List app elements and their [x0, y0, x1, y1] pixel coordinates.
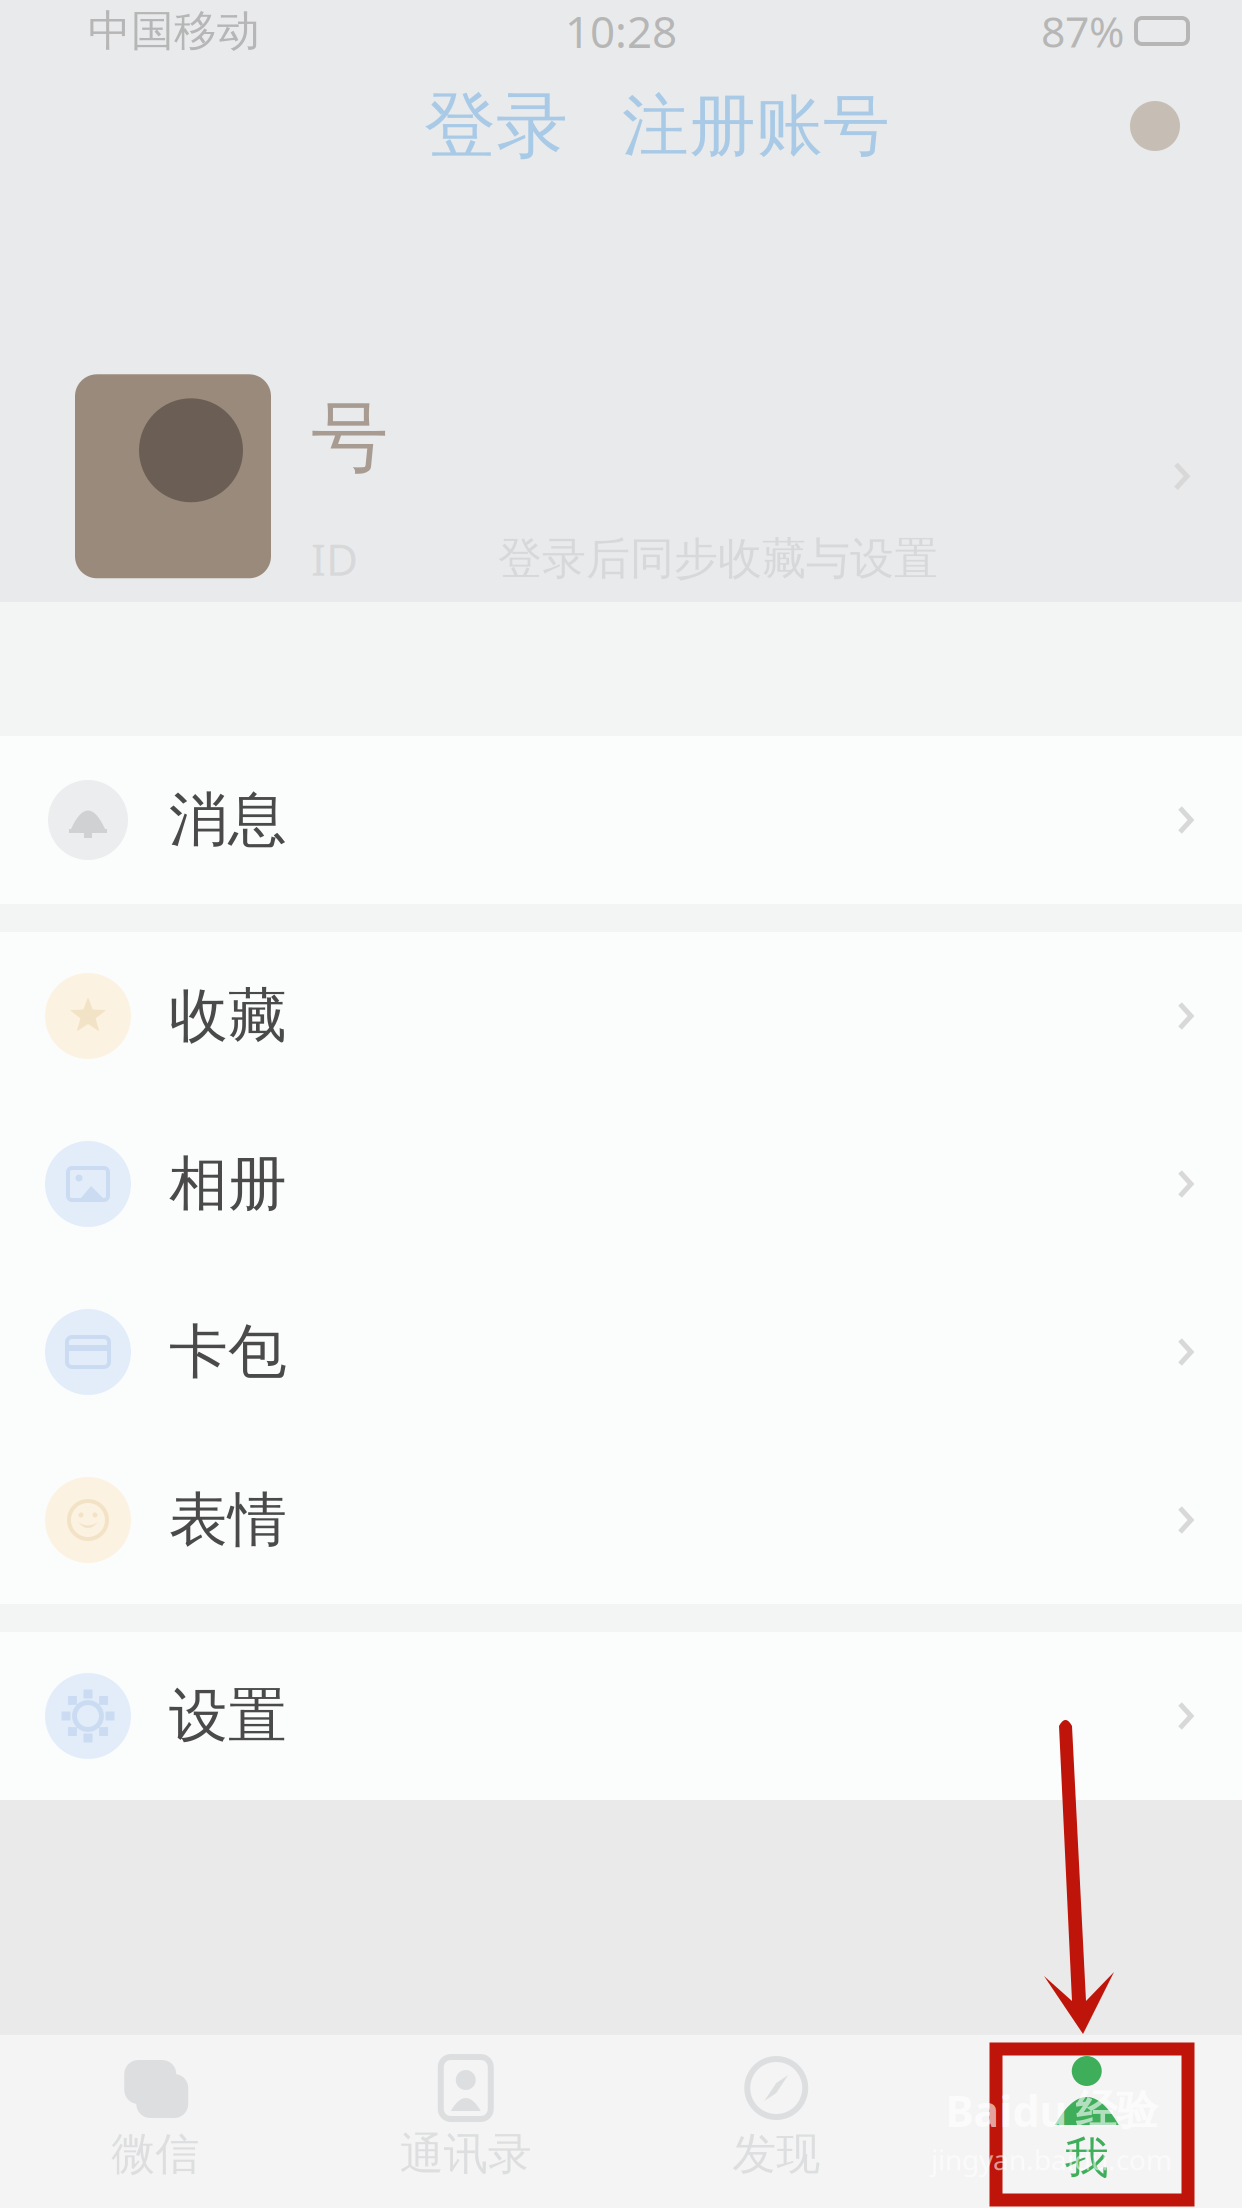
staticText: jingyan.baidu.com [931, 2141, 1172, 2178]
staticText: 表情 [169, 1484, 287, 1556]
button[interactable]: 卡包 [0, 1268, 1242, 1436]
button[interactable]: 通讯录 [310, 2035, 621, 2208]
button[interactable]: 消息 [0, 736, 1242, 904]
staticText: 我 [1065, 2131, 1109, 2185]
staticText: 消息 [169, 784, 287, 856]
staticText: 注册账号 [622, 85, 890, 167]
button[interactable]: 设置 [0, 1632, 1242, 1800]
staticText: 相册 [169, 1148, 287, 1220]
staticText: 通讯录 [400, 2127, 532, 2181]
staticText: 10:28 [565, 2, 677, 60]
button[interactable]: 表情 [0, 1436, 1242, 1604]
button[interactable]: Notifications [1130, 101, 1180, 151]
button[interactable]: 微信 [0, 2035, 310, 2208]
staticText: 登录后同步收藏与设置 [498, 532, 938, 586]
staticText: 登录 [424, 82, 568, 170]
staticText: 号 [311, 391, 388, 486]
staticText: 87% [1041, 3, 1124, 59]
staticText: 卡包 [169, 1316, 287, 1388]
button[interactable]: 发现 [621, 2035, 931, 2208]
staticText: 发现 [732, 2127, 820, 2181]
button[interactable]: 相册 [0, 1100, 1242, 1268]
staticText: 设置 [169, 1680, 287, 1752]
button[interactable]: 注册账号 [622, 85, 890, 167]
button[interactable]: 登录 [424, 82, 568, 170]
staticText: 微信 [111, 2127, 199, 2181]
staticText: 收藏 [169, 980, 287, 1052]
button[interactable]: 号 [0, 365, 1242, 602]
button[interactable]: 收藏 [0, 932, 1242, 1100]
button[interactable]: 我 [931, 2035, 1242, 2208]
staticText: 经验 [1075, 2085, 1157, 2136]
staticText: 中国移动 [88, 5, 260, 57]
staticText: Baidu [945, 2082, 1067, 2139]
staticText: ID [311, 530, 358, 588]
